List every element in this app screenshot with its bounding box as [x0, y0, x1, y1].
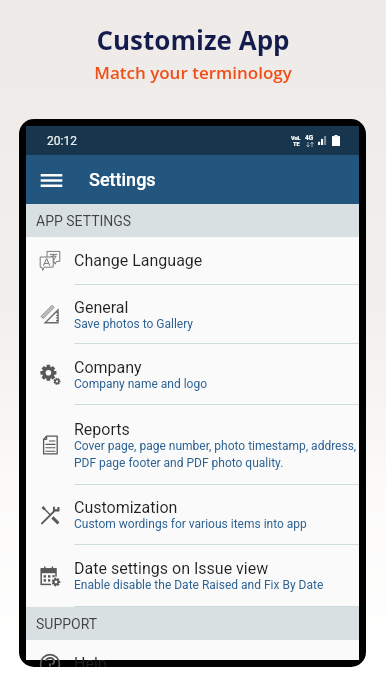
button[interactable]: Help: [26, 640, 359, 667]
staticText: TE: [293, 141, 300, 147]
button[interactable]: Reports: [26, 405, 359, 485]
button[interactable]: Open navigation menu: [35, 164, 67, 196]
staticText: General: [74, 298, 129, 317]
staticText: Settings: [89, 169, 156, 190]
staticText: APP SETTINGS: [36, 213, 132, 229]
button[interactable]: Change Language: [26, 237, 359, 285]
staticText: Help: [74, 654, 107, 667]
button[interactable]: Customization: [26, 485, 359, 545]
staticText: Company: [74, 358, 142, 377]
staticText: Customization: [74, 498, 178, 517]
button[interactable]: Company: [26, 344, 359, 405]
staticText: 4G: [305, 134, 314, 142]
staticText: Company name and logo: [74, 377, 207, 391]
staticText: Match your terminology: [0, 61, 386, 84]
staticText: Change Language: [74, 251, 203, 270]
staticText: Save photos to Gallery: [74, 317, 194, 331]
button[interactable]: General: [26, 285, 359, 344]
staticText: Customize App: [0, 22, 386, 57]
staticText: Custom wordings for various items into a…: [74, 517, 307, 531]
staticText: Enable disable the Date Raised and Fix B…: [74, 578, 324, 592]
staticText: Reports: [74, 420, 130, 439]
staticText: 20:12: [47, 134, 77, 148]
staticText: Date settings on Issue view: [74, 559, 269, 578]
staticText: SUPPORT: [36, 616, 98, 632]
staticText: Cover page, page number, photo timestamp…: [74, 439, 357, 470]
staticText: VoL: [291, 135, 301, 141]
button[interactable]: Date settings on Issue view: [26, 545, 359, 607]
